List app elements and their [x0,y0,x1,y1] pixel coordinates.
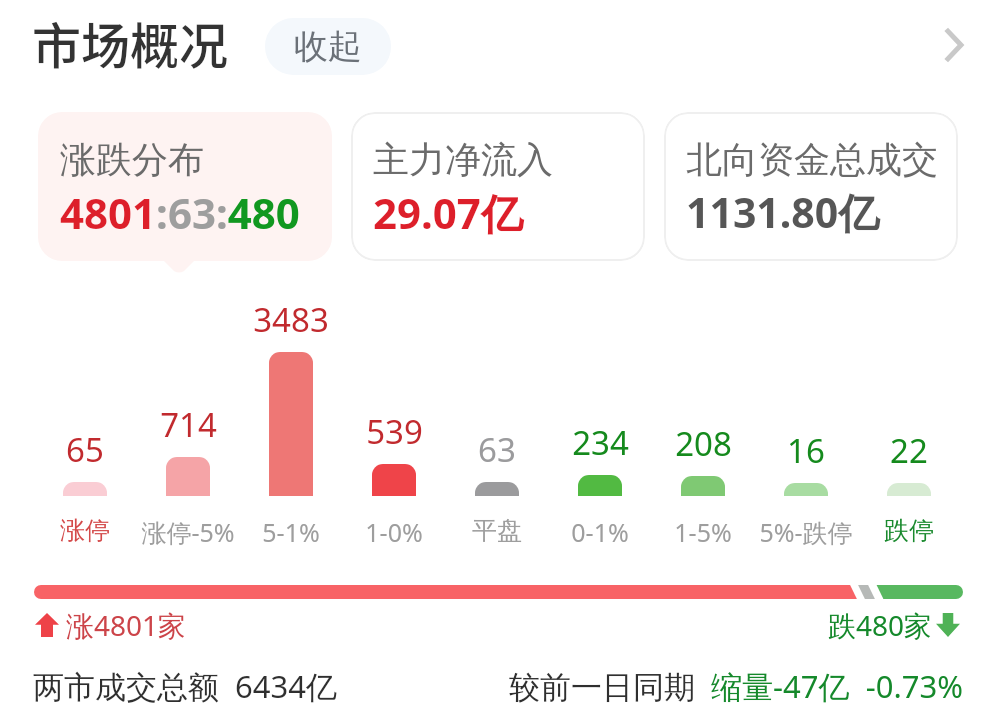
staticText: 市场概况 [32,7,229,78]
staticText: 收起 [294,25,362,68]
staticText: 4801:63:480 [60,184,300,241]
staticText: 1-5% [674,515,732,549]
staticText: 65 [66,427,104,472]
button[interactable]: 主力净流入 [351,112,645,261]
staticText: 主力净流入 [373,137,553,182]
staticText: 跌480家 [828,606,933,644]
button[interactable]: 涨跌分布 [38,112,332,261]
staticText: 平盘 [472,515,522,546]
staticText: 63 [478,427,516,472]
staticText: 两市成交总额 6434亿 [33,665,338,707]
staticText: 714 [160,402,217,447]
staticText: 16 [787,428,825,473]
staticText: 跌停 [884,515,934,546]
staticText: 较前一日同期 缩量-47亿 -0.73% [509,665,963,707]
staticText: 北向资金总成交 [686,137,938,182]
staticText: 涨停 [60,515,110,546]
button[interactable]: 收起 [265,18,391,75]
button[interactable]: More [922,14,984,76]
staticText: 234 [572,420,629,465]
staticText: 22 [890,428,928,473]
staticText: 539 [366,409,423,454]
button[interactable]: 北向资金总成交 [664,112,958,261]
staticText: 1-0% [365,515,423,549]
staticText: 0-1% [571,515,629,549]
staticText: 涨4801家 [66,606,187,644]
staticText: 29.07亿 [373,184,523,241]
staticText: 208 [675,421,732,466]
staticText: 涨跌分布 [60,137,204,182]
staticText: 1131.80亿 [686,184,880,240]
staticText: 5-1% [262,515,320,549]
staticText: 涨停-5% [141,515,235,549]
staticText: 3483 [253,297,329,342]
staticText: 5%-跌停 [759,515,853,549]
